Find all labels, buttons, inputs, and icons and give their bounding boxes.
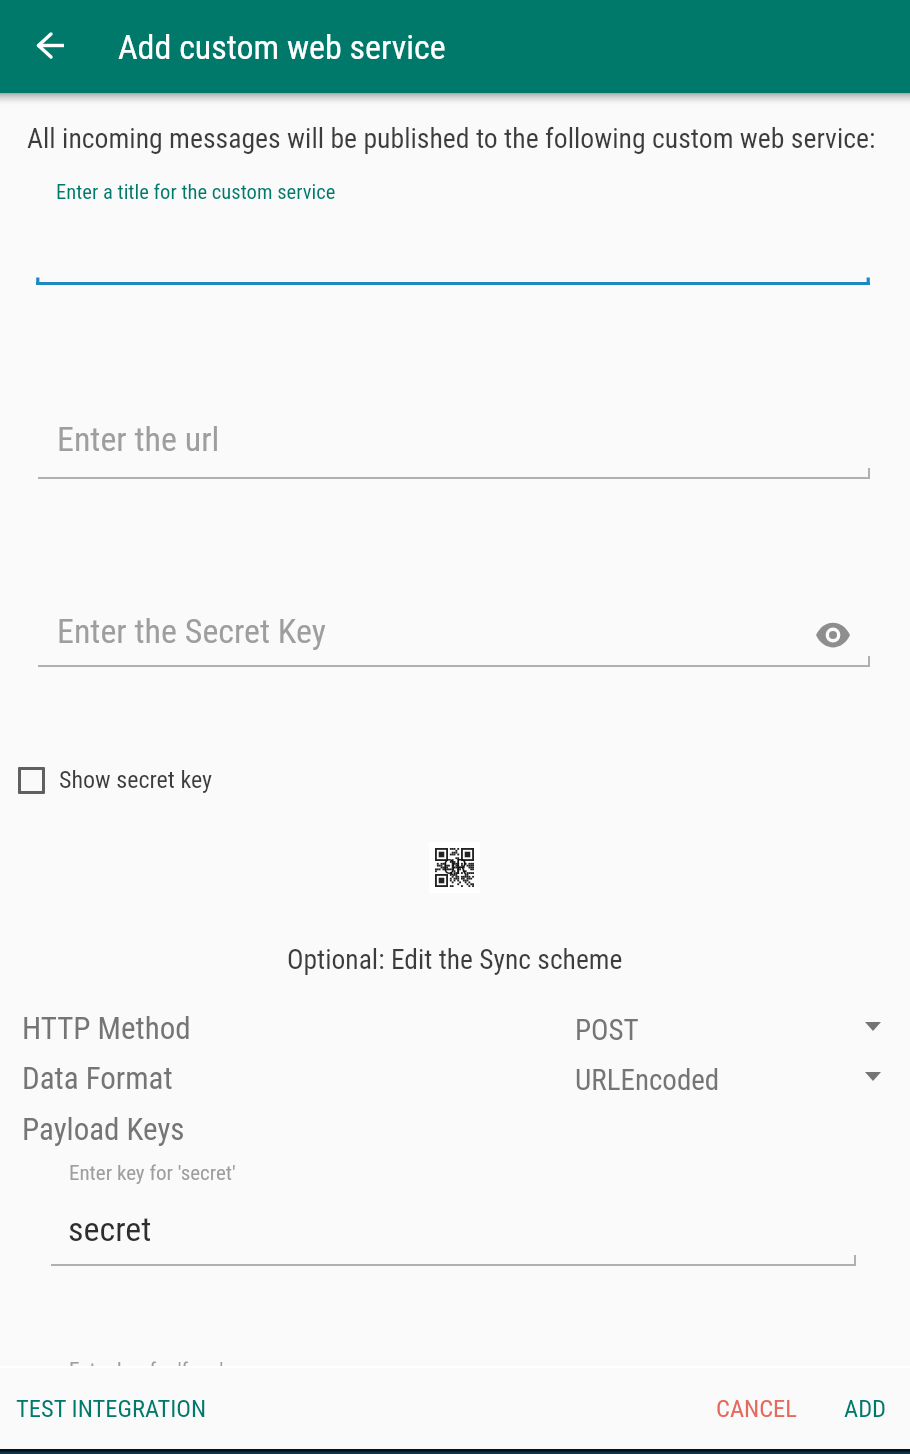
- button[interactable]: Scan QR code: [429, 842, 480, 893]
- staticText: Optional: Edit the Sync scheme: [287, 943, 623, 975]
- staticText: All incoming messages will be published …: [27, 122, 876, 154]
- staticText: TEST INTEGRATION: [16, 1394, 207, 1423]
- staticText: Payload Keys: [22, 1111, 185, 1147]
- staticText: HTTP Method: [22, 1010, 191, 1046]
- button[interactable]: HTTP Method: [0, 1010, 910, 1058]
- staticText: Enter key for 'secret': [69, 1161, 236, 1186]
- button[interactable]: ADD: [830, 1378, 901, 1439]
- button[interactable]: Show password: [810, 612, 856, 658]
- button[interactable]: Show secret key: [0, 764, 910, 796]
- staticText: secret: [68, 1209, 152, 1249]
- button[interactable]: Data Format: [0, 1060, 910, 1108]
- staticText: CANCEL: [716, 1394, 797, 1423]
- staticText: Enter the url: [57, 419, 220, 459]
- staticText: Enter a title for the custom service: [56, 180, 336, 204]
- staticText: POST: [575, 1013, 639, 1047]
- staticText: Enter key for 'from': [69, 1358, 224, 1366]
- staticText: Data Format: [22, 1060, 173, 1096]
- staticText: Add custom web service: [118, 27, 446, 67]
- staticText: URLEncoded: [575, 1063, 720, 1097]
- staticText: Show secret key: [59, 766, 213, 794]
- button[interactable]: Back: [25, 21, 77, 73]
- staticText: ADD: [844, 1394, 887, 1423]
- button[interactable]: CANCEL: [702, 1378, 811, 1439]
- button[interactable]: TEST INTEGRATION: [2, 1378, 221, 1439]
- staticText: QR: [443, 855, 467, 880]
- staticText: Enter the Secret Key: [57, 611, 326, 651]
